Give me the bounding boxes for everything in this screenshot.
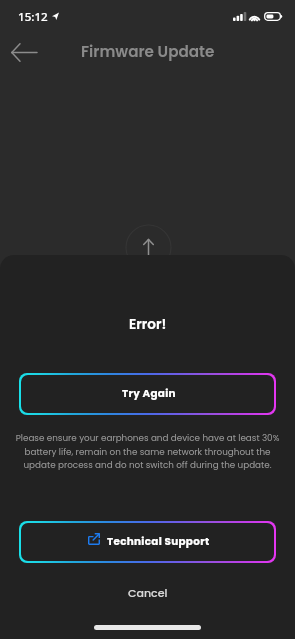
staticText: Error!: [129, 315, 167, 334]
staticText: Technical Support: [107, 534, 210, 549]
staticText: Firmware Update: [81, 41, 215, 62]
button[interactable]: Back: [2, 32, 46, 72]
staticText: Cancel: [128, 585, 168, 600]
staticText: 15:12: [18, 9, 48, 25]
staticText: Try Again: [122, 386, 176, 401]
button[interactable]: Technical Support: [21, 523, 274, 561]
button[interactable]: Try Again: [21, 375, 274, 413]
staticText: Please ensure your earphones and device …: [11, 432, 284, 471]
button[interactable]: Cancel: [0, 577, 295, 607]
